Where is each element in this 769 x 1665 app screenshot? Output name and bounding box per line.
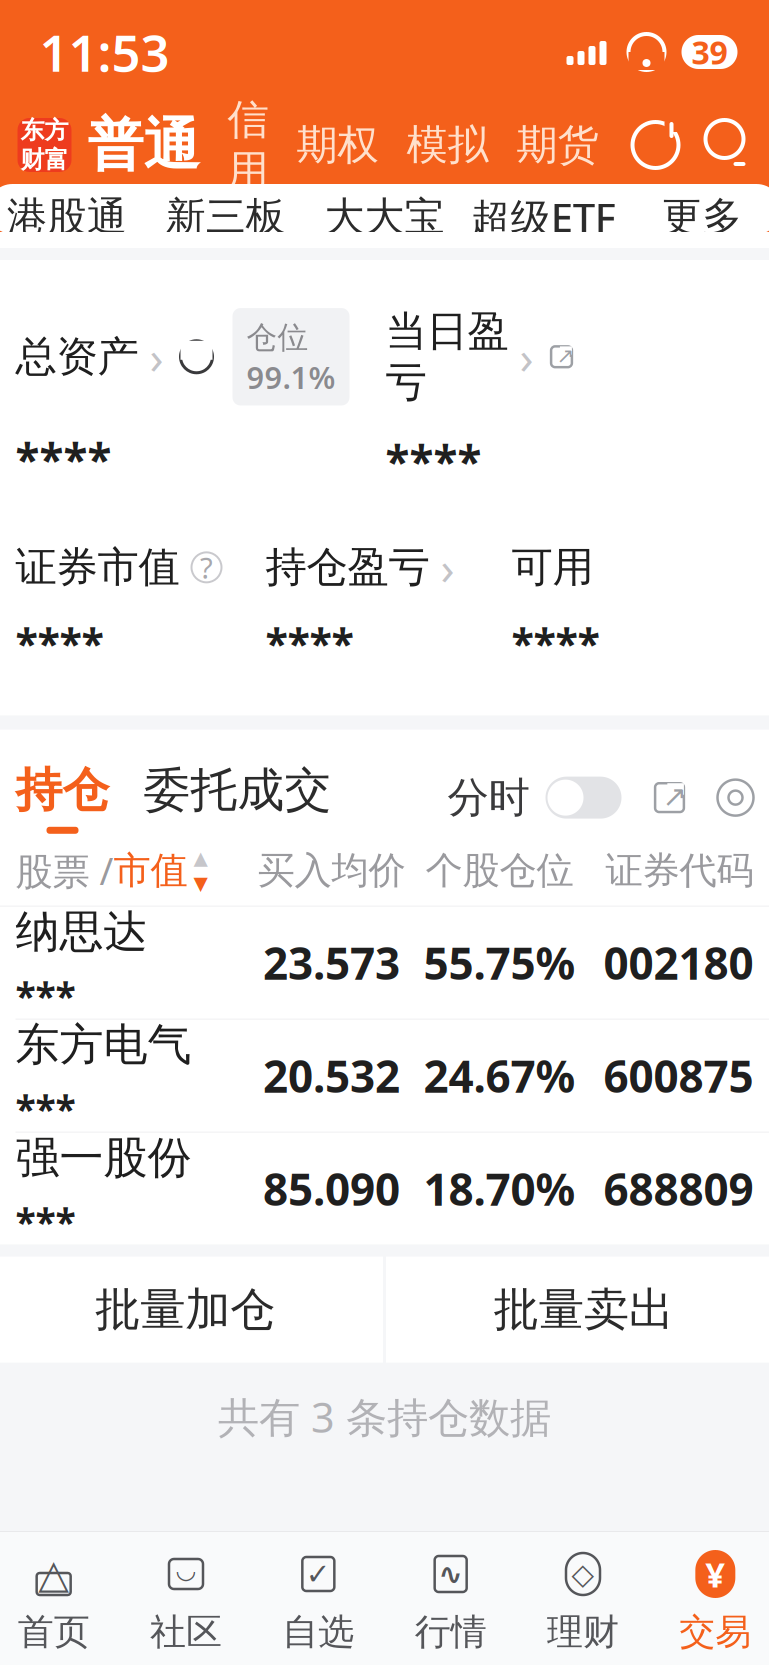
staticText: 超级ETF xyxy=(471,190,616,243)
staticText: ◡ xyxy=(175,1556,196,1584)
staticText: 新三板 xyxy=(166,192,286,241)
staticText: **** xyxy=(15,615,103,670)
button[interactable]: 强一股份 xyxy=(0,1133,769,1245)
staticText: 600875 xyxy=(603,1046,753,1105)
staticText: ↗ xyxy=(662,780,687,813)
staticText: 持仓 xyxy=(15,761,109,819)
staticText: 模拟 xyxy=(406,120,488,170)
staticText: 23.573 xyxy=(263,933,400,992)
staticText: › xyxy=(519,327,533,387)
staticText: 20.532 xyxy=(263,1046,400,1105)
staticText: 行情 xyxy=(415,1610,487,1654)
staticText: 002180 xyxy=(603,933,753,992)
button[interactable]: ◡ xyxy=(120,1550,252,1654)
staticText: 55.75% xyxy=(423,933,575,992)
staticText: ▲ xyxy=(193,847,207,869)
staticText: 买入均价 xyxy=(257,848,405,894)
button[interactable]: 期货 xyxy=(488,120,598,170)
button[interactable]: Settings xyxy=(687,778,755,818)
button[interactable]: 信用 xyxy=(199,94,268,196)
button[interactable]: Securities value info xyxy=(179,552,221,582)
button[interactable]: ¥ xyxy=(649,1550,769,1654)
staticText: 证券代码 xyxy=(605,848,753,894)
staticText: △ xyxy=(38,1551,69,1597)
button[interactable]: ∿ xyxy=(384,1550,517,1654)
staticText: 总资产 xyxy=(15,331,138,382)
staticText: 理财 xyxy=(547,1610,619,1654)
staticText: **** xyxy=(385,431,481,490)
staticText: 当日盈亏 xyxy=(385,306,508,407)
staticText: ¥ xyxy=(705,1551,725,1597)
staticText: 更多 xyxy=(662,192,742,241)
staticText: 交易 xyxy=(679,1610,751,1654)
staticText: ∿ xyxy=(438,1557,463,1591)
staticText: 信用 xyxy=(227,94,268,196)
staticText: **** xyxy=(15,429,111,488)
button[interactable]: 分时 xyxy=(447,772,621,823)
button[interactable]: 总资产 xyxy=(15,308,385,405)
button[interactable]: 模拟 xyxy=(378,120,488,170)
button[interactable]: 当日盈亏 xyxy=(385,306,583,407)
button[interactable]: 持仓盈亏 xyxy=(265,542,511,593)
staticText: 自选 xyxy=(282,1610,354,1654)
staticText: 18.70% xyxy=(423,1159,575,1218)
staticText: 仓位 99.1% xyxy=(246,316,335,397)
button[interactable]: Share holdings xyxy=(621,780,687,816)
button[interactable]: Refresh xyxy=(629,119,681,171)
staticText: **** xyxy=(511,615,599,670)
button[interactable]: 委托成交 xyxy=(109,761,331,834)
button[interactable]: 大大宝 xyxy=(305,192,464,241)
staticText: 批量加仓 xyxy=(95,1282,275,1337)
button[interactable]: ◇ xyxy=(517,1550,649,1654)
button[interactable]: 东方电气 xyxy=(0,1020,769,1132)
staticText: **** xyxy=(265,615,353,670)
staticText: 普通 xyxy=(87,111,199,179)
staticText: 持仓盈亏 xyxy=(265,542,429,593)
staticText: 期权 xyxy=(296,120,378,170)
staticText: 强一股份 xyxy=(15,1131,191,1185)
staticText: 24.67% xyxy=(423,1046,575,1105)
button[interactable]: 普通 xyxy=(87,111,199,179)
staticText: 分时 xyxy=(447,772,529,823)
staticText: › xyxy=(149,327,163,387)
staticText: 39 xyxy=(691,31,727,73)
staticText: 市值 xyxy=(113,848,187,894)
staticText: 东方 xyxy=(20,115,68,145)
staticText: ✓ xyxy=(306,1557,331,1591)
button[interactable]: 新三板 xyxy=(146,192,305,241)
staticText: 社区 xyxy=(150,1610,222,1654)
staticText: 财富 xyxy=(20,145,68,174)
staticText: *** xyxy=(15,1084,75,1133)
staticText: 个股仓位 xyxy=(425,848,573,894)
staticText: ? xyxy=(200,548,213,587)
button[interactable]: 超级ETF xyxy=(464,190,623,243)
staticText: 港股通 xyxy=(7,192,127,241)
staticText: *** xyxy=(15,971,75,1020)
button[interactable]: 批量加仓 xyxy=(0,1257,383,1363)
button[interactable]: 港股通 xyxy=(0,192,146,241)
staticText: ↗ xyxy=(556,344,574,368)
button[interactable]: 更多 xyxy=(623,192,769,241)
staticText: 期货 xyxy=(516,120,598,170)
staticText: 股票 / xyxy=(15,846,113,895)
staticText: › xyxy=(440,537,454,597)
staticText: 首页 xyxy=(18,1610,90,1654)
button[interactable]: ✓ xyxy=(252,1550,384,1654)
button[interactable]: 股票 / xyxy=(15,846,209,895)
staticText: 证券市值 xyxy=(15,542,179,593)
button[interactable]: △ xyxy=(0,1550,120,1654)
button[interactable]: 期权 xyxy=(268,120,378,170)
staticText: ◇ xyxy=(571,1557,594,1591)
staticText: 纳思达 xyxy=(15,905,147,959)
button[interactable]: 持仓 xyxy=(15,761,109,834)
button[interactable]: Search xyxy=(681,120,749,170)
staticText: 委托成交 xyxy=(143,761,331,819)
staticText: 688809 xyxy=(603,1159,753,1218)
button[interactable]: 批量卖出 xyxy=(386,1257,769,1363)
staticText: 85.090 xyxy=(263,1159,400,1218)
button[interactable]: 纳思达 xyxy=(0,907,769,1019)
staticText: 东方电气 xyxy=(15,1018,191,1072)
staticText: 共有 3 条持仓数据 xyxy=(218,1389,551,1444)
staticText: *** xyxy=(15,1197,75,1246)
staticText: 11:53 xyxy=(39,18,169,86)
